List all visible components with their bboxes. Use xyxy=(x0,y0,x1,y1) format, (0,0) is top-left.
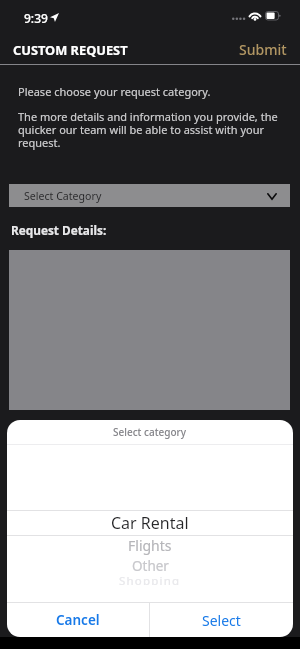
staticText: Select category xyxy=(113,425,187,439)
staticText: 9:39 xyxy=(24,10,48,26)
staticText: CUSTOM REQUEST xyxy=(13,41,128,58)
staticText: The more details and information you pro… xyxy=(18,109,284,150)
staticText: Car Rental xyxy=(111,512,189,534)
staticText: Other xyxy=(132,557,169,574)
button[interactable]: Select xyxy=(150,603,293,637)
staticText: Flights xyxy=(128,536,172,555)
button[interactable]: Submit xyxy=(226,34,300,64)
staticText: Cancel xyxy=(56,611,100,629)
staticText: Request Details: xyxy=(11,222,107,238)
staticText: Please choose your request category. xyxy=(18,84,211,99)
button[interactable]: Cancel xyxy=(7,603,149,637)
staticText: Submit xyxy=(239,40,287,58)
button[interactable]: Select Category xyxy=(9,184,290,207)
staticText: Shopping xyxy=(119,573,181,585)
staticText: Select Category xyxy=(24,189,102,203)
staticText: Select xyxy=(202,611,241,630)
